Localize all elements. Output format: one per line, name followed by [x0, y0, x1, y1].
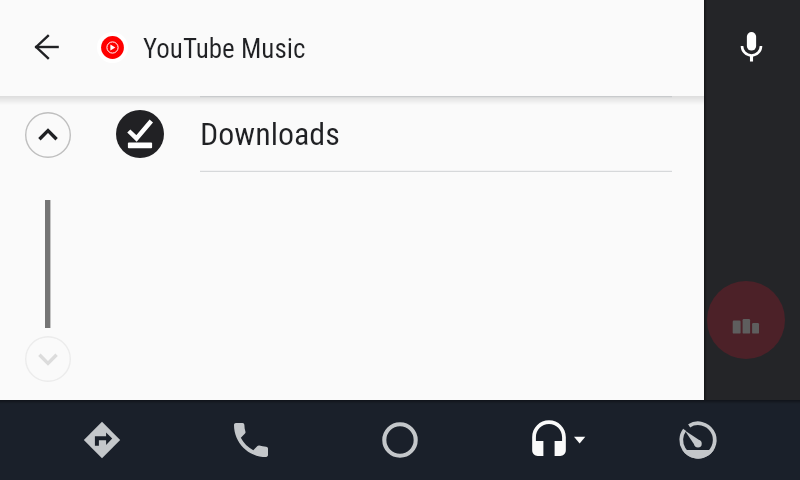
button[interactable]: Media: [502, 400, 596, 480]
button[interactable]: Phone: [204, 400, 298, 480]
button[interactable]: Dashboard: [651, 400, 745, 480]
button[interactable]: Downloads: [0, 96, 704, 172]
button[interactable]: Back: [23, 23, 71, 71]
button[interactable]: Scroll down: [25, 336, 71, 382]
button[interactable]: Now playing: [707, 281, 785, 359]
button[interactable]: Scroll up: [25, 112, 71, 158]
staticText: YouTube Music: [143, 33, 306, 65]
button[interactable]: Voice search: [733, 29, 770, 66]
staticText: Downloads: [200, 115, 340, 153]
button[interactable]: Home: [353, 400, 447, 480]
button[interactable]: Navigation: [55, 400, 149, 480]
